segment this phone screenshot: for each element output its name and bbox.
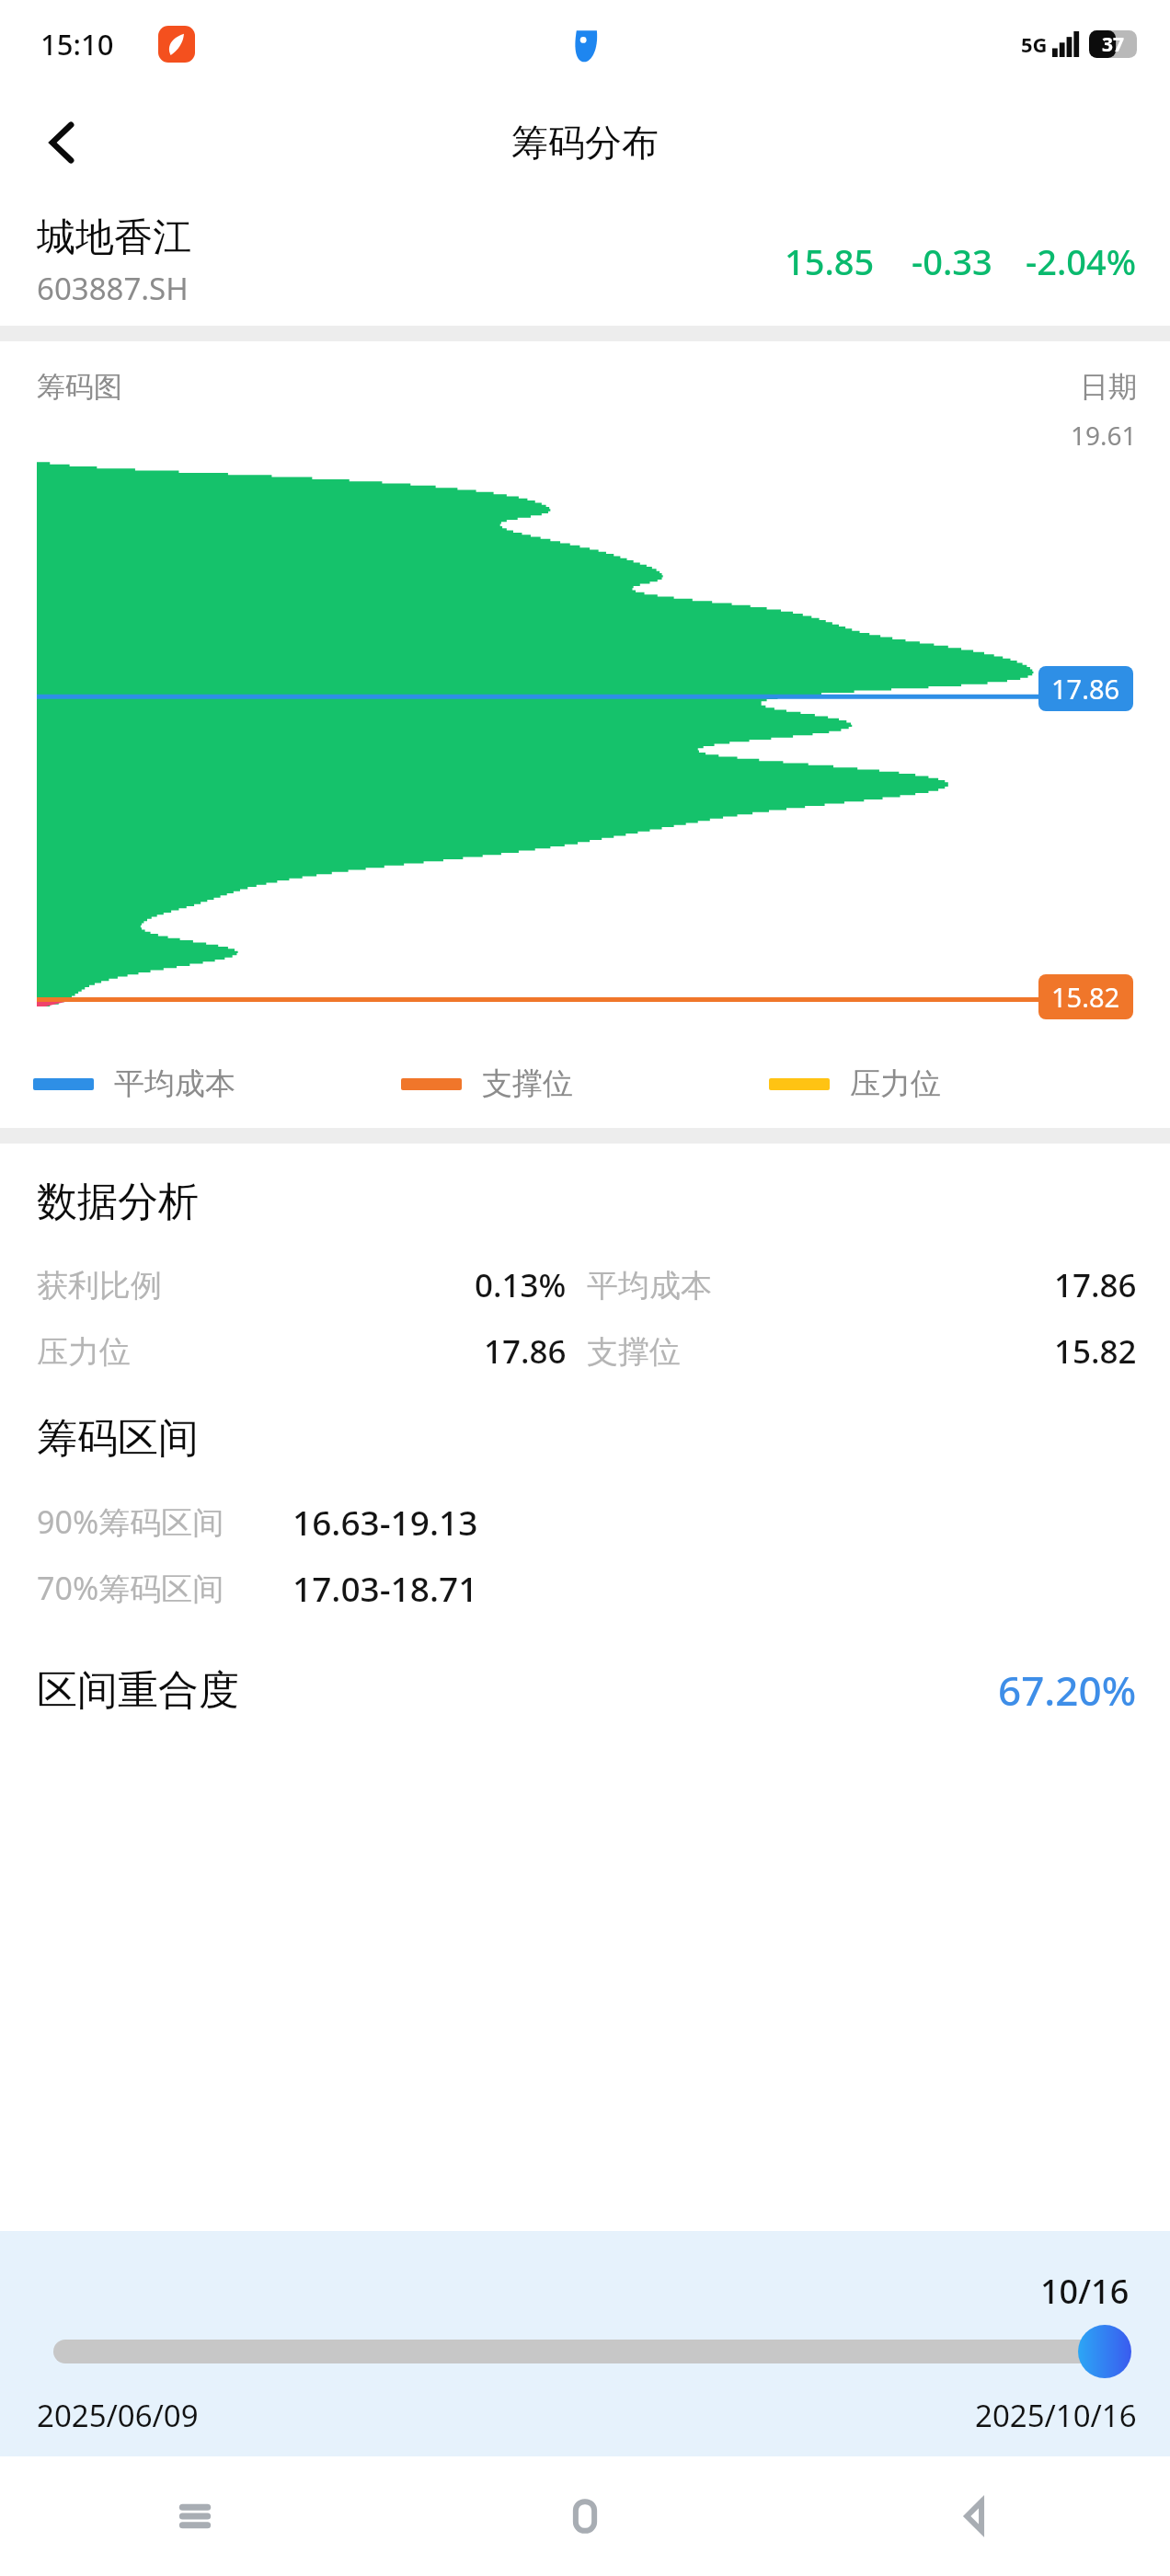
staticText: 15.82 [1054,1329,1137,1374]
staticText: -0.33 [912,237,992,285]
button[interactable]: 支撑位 [401,1064,769,1103]
staticText: 37 [1102,31,1125,58]
staticText: 17.03-18.71 [292,1565,478,1611]
staticText: 67.20% [998,1662,1137,1718]
staticText: 数据分析 [37,1177,199,1227]
staticText: 90%筹码区间 [37,1501,224,1543]
staticText: 城地香江 [37,213,191,262]
staticText: 2025/10/16 [975,2395,1137,2436]
staticText: 筹码区间 [37,1413,199,1464]
staticText: 70%筹码区间 [37,1567,224,1609]
button[interactable]: 平均成本 [33,1064,401,1103]
staticText: 15.82 [1051,979,1120,1015]
staticText: 区间重合度 [37,1665,239,1716]
staticText: 0.13% [475,1263,567,1307]
staticText: 日期 [1080,369,1137,405]
staticText: 5G [1021,30,1048,58]
staticText: 10/16 [1040,2269,1130,2314]
button[interactable]: Home [390,2456,780,2576]
button[interactable]: 区间重合度 [0,1653,1170,1727]
button[interactable]: Recents [0,2456,390,2576]
staticText: 19.61 [1071,418,1137,453]
staticText: 平均成本 [587,1266,712,1305]
staticText: 603887.SH [37,268,189,309]
staticText: 筹码图 [37,369,122,405]
staticText: 17.86 [1054,1263,1137,1307]
button[interactable]: Back [24,104,101,181]
staticText: 17.86 [484,1329,567,1374]
button[interactable]: Back [780,2456,1170,2576]
staticText: 15.85 [785,237,875,285]
staticText: -2.04% [1026,237,1137,285]
staticText: 压力位 [37,1332,131,1372]
button[interactable]: 压力位 [769,1064,1137,1103]
staticText: 支撑位 [482,1064,573,1103]
staticText: 17.86 [1051,671,1120,707]
staticText: 2025/06/09 [37,2395,199,2436]
staticText: 16.63-19.13 [292,1499,478,1545]
staticText: 平均成本 [114,1064,235,1103]
staticText: 15:10 [40,25,114,63]
button[interactable]: Date slider [0,2319,1170,2384]
staticText: 筹码分布 [511,120,659,166]
staticText: 支撑位 [587,1332,681,1372]
button[interactable]: 城地香江 [0,197,1170,326]
staticText: 获利比例 [37,1266,162,1305]
staticText: 压力位 [850,1064,941,1103]
